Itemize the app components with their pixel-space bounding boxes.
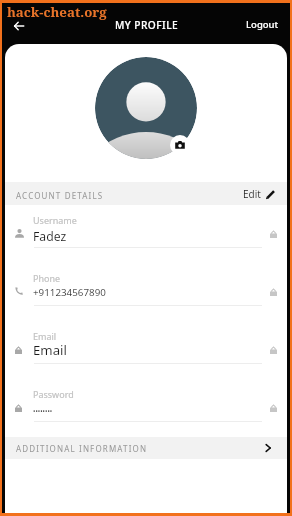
staticText: +911234567890 [33,286,106,299]
staticText: Password [33,388,74,400]
staticText: Email [33,330,57,342]
staticText: Fadez [33,228,67,245]
staticText: Logout [246,18,279,31]
button[interactable]: ADDITIONAL INFORMATION [5,437,287,459]
button[interactable]: Change photo [170,135,190,155]
staticText: Email [33,341,67,359]
button[interactable]: Edit [241,184,278,204]
staticText: Phone [33,272,61,284]
button[interactable]: Back [5,12,33,40]
staticText: MY PROFILE [115,18,179,32]
staticText: ADDITIONAL INFORMATION [16,443,148,454]
staticText: Username [33,214,77,226]
button[interactable]: Username [5,205,287,263]
staticText: •••••••• [33,407,53,416]
staticText: ACCOUNT DETAILS [16,190,104,201]
staticText: hack-cheat.org [7,3,107,21]
button[interactable]: Phone [5,263,287,321]
staticText: Edit [243,187,261,201]
button[interactable]: Password [5,379,287,437]
button[interactable]: Logout [235,12,290,37]
button[interactable]: Email [5,321,287,379]
